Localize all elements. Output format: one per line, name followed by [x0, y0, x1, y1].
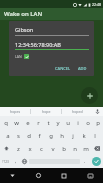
staticText: i [77, 119, 79, 127]
staticText: q [4, 119, 8, 127]
button[interactable]: k [78, 129, 89, 142]
button[interactable]: g [45, 129, 56, 142]
button[interactable]: Backspace [91, 142, 103, 155]
button[interactable]: Space [29, 158, 80, 165]
staticText: w [14, 119, 19, 127]
staticText: Wake on LAN [4, 10, 43, 18]
staticText: g [49, 132, 53, 140]
staticText: hope [42, 109, 51, 114]
button[interactable]: Shift [0, 142, 12, 155]
staticText: s [17, 132, 20, 140]
staticText: k [82, 132, 86, 140]
button[interactable]: r [33, 116, 43, 129]
staticText: ?123 [2, 160, 9, 164]
staticText: n [73, 145, 77, 153]
staticText: z [17, 145, 20, 153]
staticText: ADD [78, 66, 87, 71]
button[interactable]: b [58, 142, 69, 155]
button[interactable]: LAN [15, 54, 29, 59]
staticText: Gibson [15, 26, 34, 33]
staticText: l [94, 132, 96, 140]
staticText: h [60, 132, 64, 140]
staticText: r [37, 119, 40, 127]
staticText: t [47, 119, 50, 127]
staticText: v [51, 145, 55, 153]
button[interactable]: v [47, 142, 58, 155]
staticText: f [38, 132, 41, 140]
button[interactable]: u [63, 116, 73, 129]
staticText: u [66, 119, 70, 127]
button[interactable]: h [56, 129, 67, 142]
staticText: 12:34:56:78:90:AB [15, 41, 61, 48]
staticText: p [96, 119, 100, 127]
staticText: CANCEL [55, 66, 71, 71]
button[interactable]: s [13, 129, 23, 142]
staticText: y [56, 119, 60, 127]
button[interactable]: l [89, 129, 100, 142]
button[interactable]: i [73, 116, 83, 129]
button[interactable]: Recents [51, 168, 77, 183]
button[interactable]: hoped [62, 107, 92, 116]
button[interactable]: CANCEL [53, 64, 73, 73]
staticText: x [28, 145, 32, 153]
button[interactable]: ?123 [0, 155, 11, 168]
button[interactable]: ADD [76, 64, 89, 73]
button[interactable]: p [93, 116, 103, 129]
button[interactable]: Voice input [92, 107, 103, 116]
button[interactable]: y [53, 116, 63, 129]
staticText: hopes [10, 109, 21, 114]
staticText: 22:48 [92, 2, 101, 7]
staticText: e [26, 119, 30, 127]
button[interactable]: f [34, 129, 45, 142]
staticText: a [6, 132, 10, 140]
staticText: c [40, 145, 43, 153]
button[interactable]: Switch keyboard [77, 168, 103, 183]
staticText: , [15, 158, 17, 165]
button[interactable]: . [80, 155, 89, 168]
staticText: d [27, 132, 31, 140]
button[interactable]: Home [25, 168, 51, 183]
button[interactable]: z [12, 142, 24, 155]
button[interactable]: w [11, 116, 22, 129]
button[interactable]: n [69, 142, 80, 155]
button[interactable]: hope [31, 107, 61, 116]
button[interactable]: t [43, 116, 53, 129]
staticText: . [84, 158, 86, 165]
button[interactable]: q [0, 116, 11, 129]
button[interactable]: e [22, 116, 33, 129]
staticText: hoped [72, 109, 83, 114]
staticText: b [62, 145, 66, 153]
button[interactable]: Add device [81, 87, 98, 104]
button[interactable]: Change language [20, 155, 29, 168]
staticText: j [72, 132, 74, 140]
button[interactable]: a [3, 129, 13, 142]
button[interactable]: x [24, 142, 36, 155]
button[interactable]: Back [0, 168, 25, 183]
button[interactable]: Enter [89, 155, 103, 168]
button[interactable]: m [80, 142, 91, 155]
staticText: m [83, 145, 89, 153]
button[interactable]: c [36, 142, 47, 155]
button[interactable]: j [67, 129, 78, 142]
staticText: LAN [15, 54, 22, 59]
staticText: o [86, 119, 90, 127]
button[interactable]: d [23, 129, 34, 142]
button[interactable]: , [11, 155, 20, 168]
button[interactable]: o [83, 116, 93, 129]
button[interactable]: hopes [0, 107, 30, 116]
